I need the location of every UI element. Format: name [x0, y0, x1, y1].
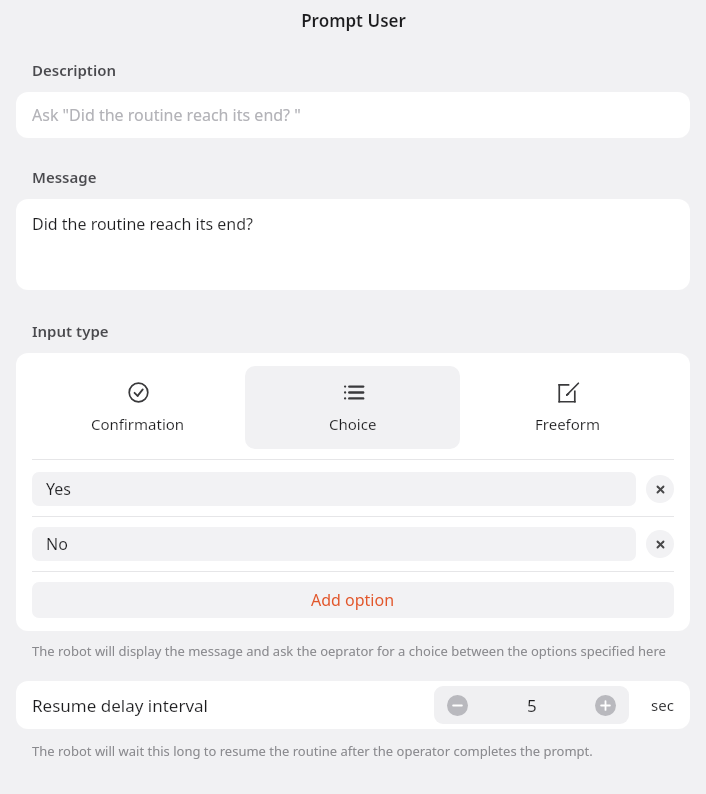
button[interactable]: Add option: [32, 582, 674, 618]
staticText: Description: [32, 60, 116, 80]
staticText: Prompt User: [301, 9, 406, 32]
staticText: Freeform: [535, 414, 601, 434]
button[interactable]: Choice: [245, 366, 460, 449]
button[interactable]: Freeform: [460, 366, 675, 449]
staticText: Add option: [311, 589, 395, 611]
staticText: The robot will display the message and a…: [32, 642, 666, 660]
staticText: Did the routine reach its end?: [32, 213, 253, 235]
staticText: Input type: [32, 321, 109, 341]
staticText: Resume delay interval: [32, 694, 208, 717]
staticText: Message: [32, 167, 97, 187]
button[interactable]: No: [32, 527, 636, 561]
staticText: No: [46, 533, 68, 555]
staticText: The robot will wait this long to resume …: [32, 742, 593, 760]
button[interactable]: Increase: [595, 695, 616, 716]
staticText: Yes: [46, 478, 71, 500]
button[interactable]: Ask "Did the routine reach its end? ": [16, 92, 690, 138]
button[interactable]: Resume delay interval: [16, 681, 690, 729]
button[interactable]: Decrease: [447, 695, 468, 716]
staticText: Ask "Did the routine reach its end? ": [32, 104, 301, 126]
button[interactable]: Did the routine reach its end?: [16, 199, 690, 290]
button[interactable]: Confirmation: [31, 366, 245, 449]
button[interactable]: Remove option: [646, 475, 674, 503]
button[interactable]: Yes: [32, 472, 636, 506]
button[interactable]: Remove option: [646, 530, 674, 558]
staticText: Choice: [329, 414, 377, 434]
staticText: 5: [527, 694, 537, 717]
staticText: Confirmation: [91, 414, 185, 434]
staticText: sec: [651, 695, 674, 715]
